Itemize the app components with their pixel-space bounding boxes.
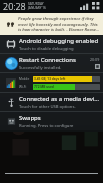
staticText: Successfully installed. [19,65,62,71]
staticText: Mobile [19,77,30,81]
staticText: 20:28 [3,0,26,12]
other: Notification action [95,64,100,69]
staticText: 20:09 [90,57,100,62]
button[interactable]: Restart Connections [0,54,103,72]
staticText: Android debugging enabled [19,37,99,45]
button[interactable]: People grow through experience if they m… [0,13,103,35]
button[interactable]: Data usage [0,73,103,92]
staticText: Touch for other USB options. [19,104,76,110]
staticText: Swapps [19,114,41,122]
other: USB debugging [6,39,16,49]
staticText: Connected as a media device [19,95,100,103]
staticText: JANUARY 16 [28,6,46,10]
staticText: 3.45 GB, 13 days left [34,77,66,81]
staticText: People grow through experience if they m… [18,16,100,32]
button[interactable]: USB debugging [0,35,103,53]
other: Swapps [7,117,16,126]
other: USB connection [7,98,16,107]
button[interactable]: USB connection [0,93,103,111]
staticText: Running. Press to configure [19,123,74,129]
staticText: Wi-Fi [19,85,27,89]
staticText: Touch to disable debugging [19,46,74,52]
staticText: 772 MB used [34,85,54,89]
staticText: Restart Connections [19,56,76,64]
button[interactable]: Swapps [0,112,103,130]
other: Restart Connections [5,57,18,70]
other: Data usage [6,78,16,88]
staticText: SATURDAY [28,2,44,6]
